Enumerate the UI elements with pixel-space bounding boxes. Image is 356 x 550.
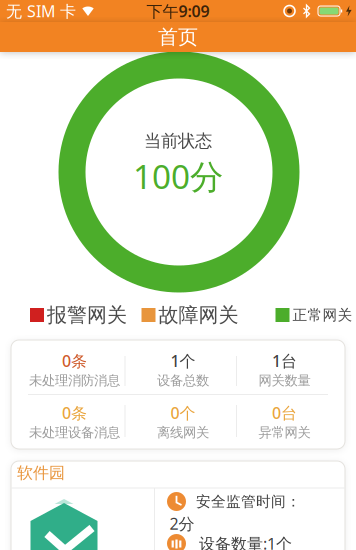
staticText: 未处理设备消息 <box>29 424 120 441</box>
staticText: 1个 <box>170 350 195 371</box>
staticText: 0条 <box>62 402 87 423</box>
staticText: 0台 <box>272 402 297 423</box>
staticText: 故障网关 <box>158 303 238 327</box>
button[interactable]: 软件园 <box>11 461 345 550</box>
staticText: 正常网关 <box>292 306 352 324</box>
staticText: 100分 <box>133 154 223 198</box>
staticText: 0条 <box>62 350 87 371</box>
staticText: 报警网关 <box>47 303 127 327</box>
staticText: 未处理消防消息 <box>29 372 120 389</box>
staticText: 安全监管时间： <box>196 492 301 510</box>
staticText: 0个 <box>170 402 195 423</box>
staticText: 首页 <box>158 25 198 49</box>
staticText: 1台 <box>272 350 297 371</box>
staticText: 网关数量 <box>258 372 310 389</box>
staticText: 无 SIM 卡 <box>6 0 76 22</box>
staticText: 软件园 <box>17 463 65 483</box>
staticText: 当前状态 <box>144 130 212 152</box>
staticText: 异常网关 <box>258 424 310 441</box>
staticText: 2分 <box>169 513 194 534</box>
staticText: 设备数量:1个 <box>199 533 292 550</box>
staticText: 下午9:09 <box>146 0 209 22</box>
staticText: 离线网关 <box>157 424 209 441</box>
staticText: 设备总数 <box>157 372 209 389</box>
